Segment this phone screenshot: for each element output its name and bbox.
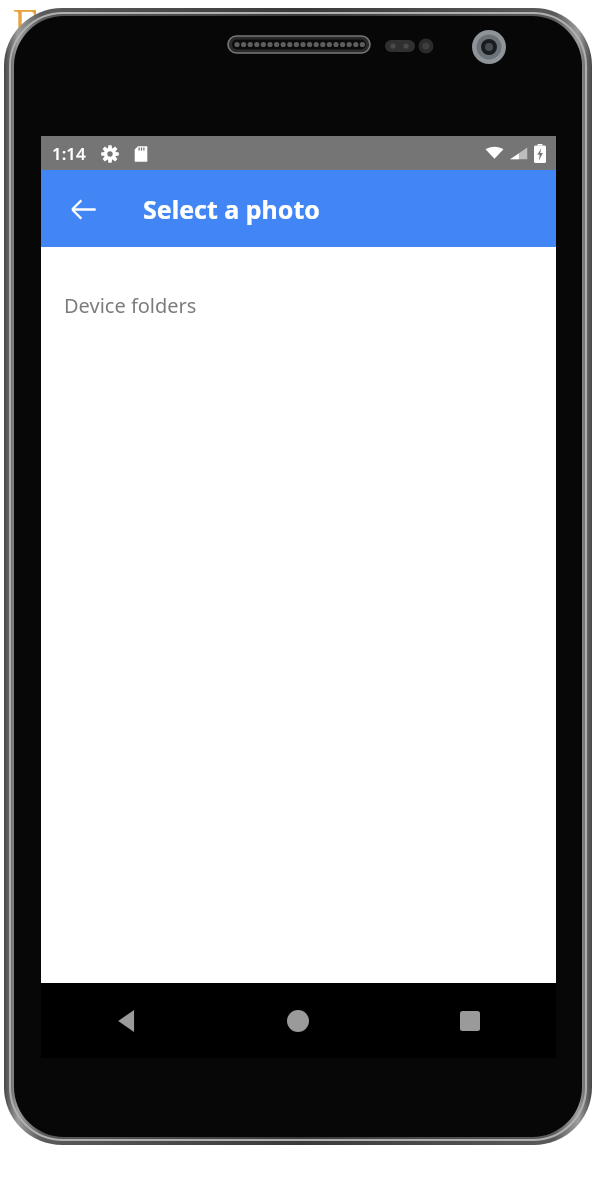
button[interactable]: Home xyxy=(212,983,384,1058)
staticText: F xyxy=(12,0,39,57)
staticText: Device folders xyxy=(64,292,197,319)
staticText: Select a photo xyxy=(143,192,320,226)
staticText: 1:14 xyxy=(52,142,86,165)
button[interactable]: Back xyxy=(41,983,212,1058)
button[interactable]: Recent apps xyxy=(384,983,556,1058)
button[interactable]: Navigate up xyxy=(59,185,107,233)
